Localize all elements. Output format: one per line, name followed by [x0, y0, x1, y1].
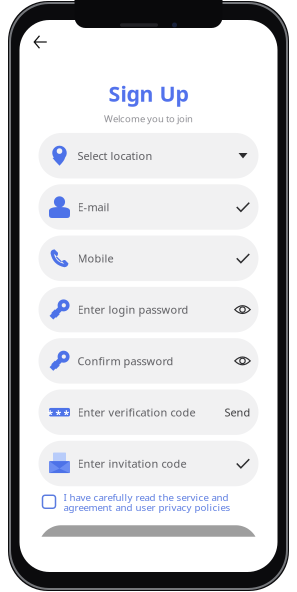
staticText: Enter invitation code — [77, 456, 186, 471]
staticText: I have carefully read the service and — [63, 491, 228, 504]
button[interactable]: Enter invitation code — [38, 441, 258, 486]
button[interactable]: E-mail — [38, 184, 258, 230]
staticText: Enter login password — [77, 302, 188, 317]
staticText: Enter verification code — [77, 405, 195, 420]
button[interactable]: I have carefully read the service and — [38, 492, 258, 512]
staticText: * — [47, 407, 53, 421]
staticText: Send — [224, 405, 250, 420]
button[interactable]: * — [38, 389, 258, 435]
button[interactable]: Back — [26, 28, 54, 56]
staticText: Sign Up — [108, 79, 188, 108]
staticText: Confirm password — [77, 353, 173, 368]
staticText: * — [64, 407, 70, 421]
button[interactable]: Enter login password — [38, 287, 258, 332]
button[interactable]: Mobile — [38, 235, 258, 281]
staticText: * — [55, 407, 61, 421]
staticText: Welcome you to join — [104, 112, 193, 125]
staticText: Mobile — [77, 251, 113, 266]
staticText: Select location — [77, 148, 152, 163]
button[interactable]: Confirm password — [38, 338, 258, 384]
staticText: agreement and user privacy policies — [63, 501, 230, 514]
button[interactable]: Select location — [38, 133, 258, 178]
staticText: E-mail — [77, 200, 109, 214]
